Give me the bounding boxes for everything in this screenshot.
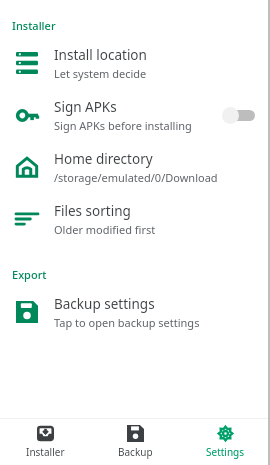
staticText: Tap to open backup settings — [54, 315, 200, 330]
staticText: Home directory — [54, 150, 153, 168]
staticText: Files sorting — [54, 202, 131, 220]
staticText: Export — [12, 267, 47, 282]
staticText: Older modified first — [54, 222, 156, 237]
button[interactable]: Backup settings — [0, 286, 270, 338]
button[interactable]: Installer — [0, 419, 90, 465]
button[interactable]: Sign APKs toggle — [222, 104, 258, 126]
button[interactable]: Install location — [0, 37, 270, 89]
button[interactable]: Backup — [90, 419, 180, 465]
button[interactable]: Files sorting — [0, 193, 270, 245]
staticText: Install location — [54, 46, 147, 64]
staticText: Installer — [12, 18, 56, 33]
staticText: Installer — [26, 445, 65, 459]
staticText: Sign APKs before installing — [54, 118, 192, 133]
staticText: Let system decide — [54, 66, 147, 81]
staticText: Backup settings — [54, 295, 155, 313]
staticText: Sign APKs — [54, 98, 117, 116]
button[interactable]: Settings — [180, 419, 270, 465]
staticText: Settings — [206, 445, 245, 459]
button[interactable]: Sign APKs — [0, 89, 270, 141]
staticText: Backup — [118, 445, 153, 459]
button[interactable]: Home directory — [0, 141, 270, 193]
staticText: /storage/emulated/0/Download — [54, 170, 218, 185]
